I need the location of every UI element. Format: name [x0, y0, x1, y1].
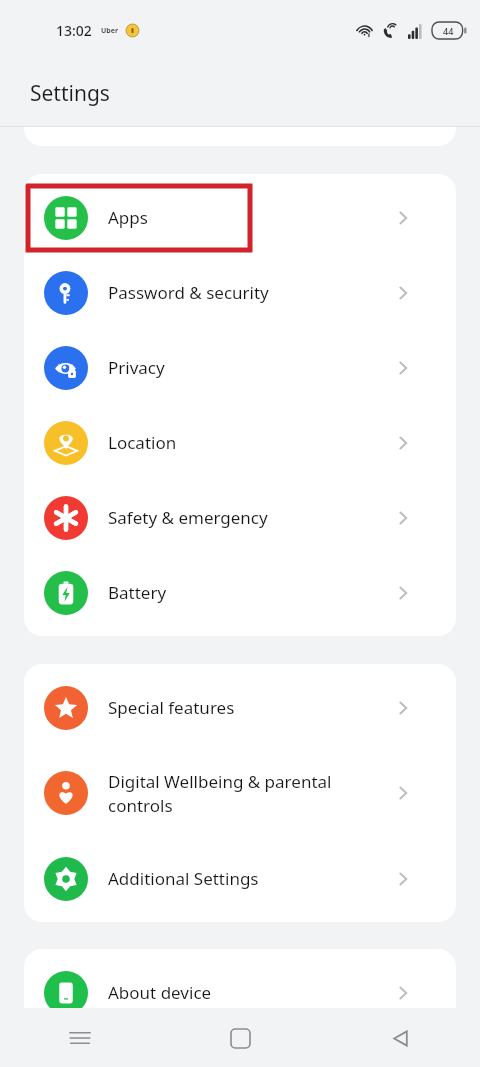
button[interactable]: Password & security — [24, 255, 456, 330]
button[interactable]: Location — [24, 405, 456, 480]
button[interactable]: Back — [371, 1009, 429, 1067]
button[interactable]: Apps — [24, 180, 456, 255]
staticText: Uber — [101, 26, 119, 36]
staticText: Privacy — [108, 356, 388, 379]
staticText: Additional Settings — [108, 867, 388, 890]
button[interactable]: About device — [24, 955, 456, 1030]
staticText: Apps — [108, 206, 388, 229]
staticText: Settings — [30, 79, 110, 108]
button[interactable]: Privacy — [24, 330, 456, 405]
button[interactable]: Digital Wellbeing & parental controls — [24, 745, 456, 841]
staticText: Special features — [108, 696, 388, 719]
button[interactable]: Additional Settings — [24, 841, 456, 916]
button[interactable]: Special features — [24, 670, 456, 745]
button[interactable]: Battery — [24, 555, 456, 630]
button[interactable]: Safety & emergency — [24, 480, 456, 555]
staticText: 13:02 — [56, 21, 92, 40]
staticText: 44 — [443, 25, 454, 37]
staticText: About device — [108, 981, 388, 1004]
button[interactable]: Recent apps — [51, 1009, 109, 1067]
button[interactable]: Home — [211, 1009, 269, 1067]
staticText: Battery — [108, 581, 388, 604]
staticText: Location — [108, 431, 388, 454]
staticText: Safety & emergency — [108, 506, 388, 529]
staticText: Digital Wellbeing & parental controls — [108, 770, 388, 817]
staticText: Password & security — [108, 281, 388, 304]
